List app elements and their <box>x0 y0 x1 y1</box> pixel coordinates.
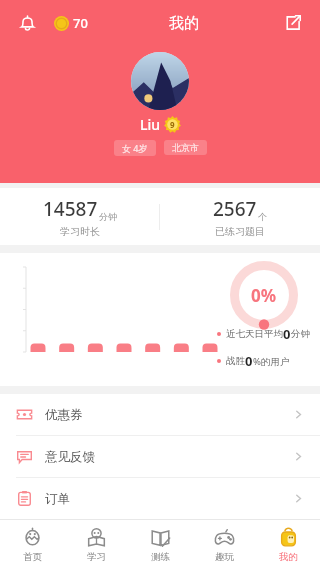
button[interactable]: 2567 <box>160 196 320 238</box>
button[interactable]: 测练 <box>128 520 192 569</box>
button[interactable]: 70 <box>54 14 88 32</box>
staticText: 战胜 <box>226 355 245 367</box>
button[interactable]: 14587 <box>0 196 159 238</box>
staticText: 北京市 <box>172 142 199 153</box>
staticText: 已练习题目 <box>215 225 265 238</box>
staticText: 优惠券 <box>45 407 83 423</box>
staticText: 我的 <box>169 14 199 33</box>
staticText: 女 4岁 <box>122 142 148 154</box>
button[interactable]: Notifications <box>14 10 40 36</box>
staticText: 首页 <box>23 551 42 563</box>
button[interactable]: 学习 <box>64 520 128 569</box>
staticText: 测练 <box>151 551 170 563</box>
staticText: 70 <box>73 14 88 32</box>
staticText: 近七天日平均 <box>226 328 283 340</box>
staticText: 0 <box>283 325 291 343</box>
staticText: 分钟 <box>291 328 310 340</box>
button[interactable]: 优惠券 <box>0 394 320 435</box>
button[interactable]: 意见反馈 <box>0 436 320 477</box>
button[interactable]: Avatar <box>131 52 189 110</box>
staticText: 分钟 <box>99 211 117 222</box>
staticText: 14587 <box>43 196 98 222</box>
staticText: 学习 <box>87 551 106 563</box>
staticText: Liu <box>140 115 161 134</box>
staticText: 趣玩 <box>215 551 234 563</box>
button[interactable]: 趣玩 <box>192 520 256 569</box>
staticText: 学习时长 <box>60 225 100 238</box>
staticText: %的用户 <box>253 355 290 368</box>
button[interactable]: 订单 <box>0 478 320 519</box>
staticText: 0% <box>251 284 277 307</box>
staticText: 意见反馈 <box>45 449 95 465</box>
staticText: 2567 <box>213 196 257 222</box>
button[interactable]: 首页 <box>0 520 64 569</box>
staticText: 0 <box>245 352 253 370</box>
button[interactable]: Share <box>280 10 306 36</box>
staticText: 个 <box>258 211 267 222</box>
staticText: 订单 <box>45 491 70 507</box>
staticText: 我的 <box>279 551 298 563</box>
staticText: 9 <box>170 119 175 130</box>
button[interactable]: 我的 <box>256 520 320 569</box>
